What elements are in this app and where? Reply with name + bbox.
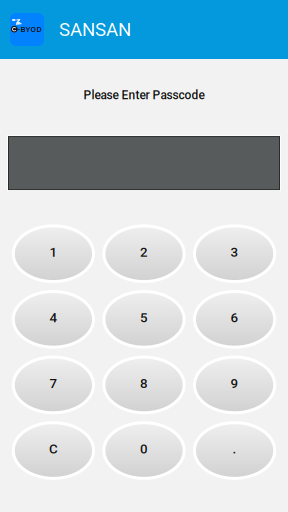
staticText: SANSAN	[59, 19, 131, 40]
staticText: -BYOD	[18, 24, 42, 34]
button[interactable]: 6	[194, 291, 275, 347]
staticText: 7	[49, 376, 57, 391]
button[interactable]: 7	[13, 357, 93, 413]
staticText: 6	[231, 310, 239, 326]
button[interactable]: C	[13, 423, 93, 478]
button[interactable]: 0	[104, 423, 184, 478]
button[interactable]: eBYOD	[0, 13, 44, 46]
staticText: Please Enter Passcode	[83, 88, 204, 102]
button[interactable]: 2	[104, 226, 184, 282]
staticText: 8	[140, 376, 148, 391]
staticText: 5	[140, 310, 148, 326]
button[interactable]: 9	[194, 357, 275, 413]
staticText: 9	[231, 376, 239, 391]
staticText: 0	[140, 441, 148, 457]
staticText: 3	[231, 244, 239, 260]
staticText: .	[233, 441, 237, 457]
button[interactable]: 4	[13, 291, 93, 347]
button[interactable]: 1	[13, 226, 93, 282]
staticText: 4	[49, 310, 57, 326]
button[interactable]: .	[194, 423, 275, 478]
button[interactable]: 3	[194, 226, 275, 282]
staticText: 1	[49, 244, 57, 260]
button[interactable]: 5	[104, 291, 184, 347]
staticText: C	[49, 441, 58, 457]
button[interactable]: 8	[104, 357, 184, 413]
staticText: 2	[140, 244, 148, 260]
